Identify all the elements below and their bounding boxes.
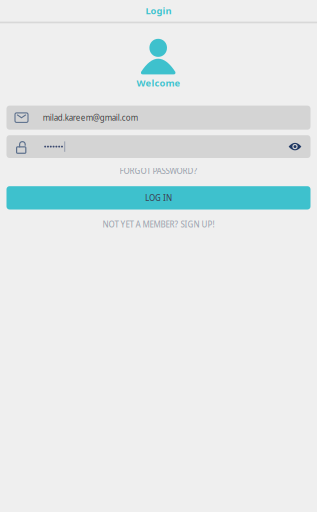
staticText: NOT YET A MEMBER? SIGN UP! <box>102 219 214 230</box>
staticText: LOG IN <box>145 192 172 203</box>
staticText: Welcome <box>136 77 180 89</box>
staticText: milad.kareem@gmail.com <box>43 112 138 123</box>
button[interactable]: NOT YET A MEMBER? SIGN UP! <box>6 217 310 231</box>
button[interactable]: LOG IN <box>6 186 310 209</box>
staticText: Login <box>145 5 171 17</box>
button[interactable]: Show password <box>279 135 310 158</box>
button[interactable]: FORGOT PASSWORD? <box>6 164 310 178</box>
staticText: FORGOT PASSWORD? <box>119 166 197 176</box>
